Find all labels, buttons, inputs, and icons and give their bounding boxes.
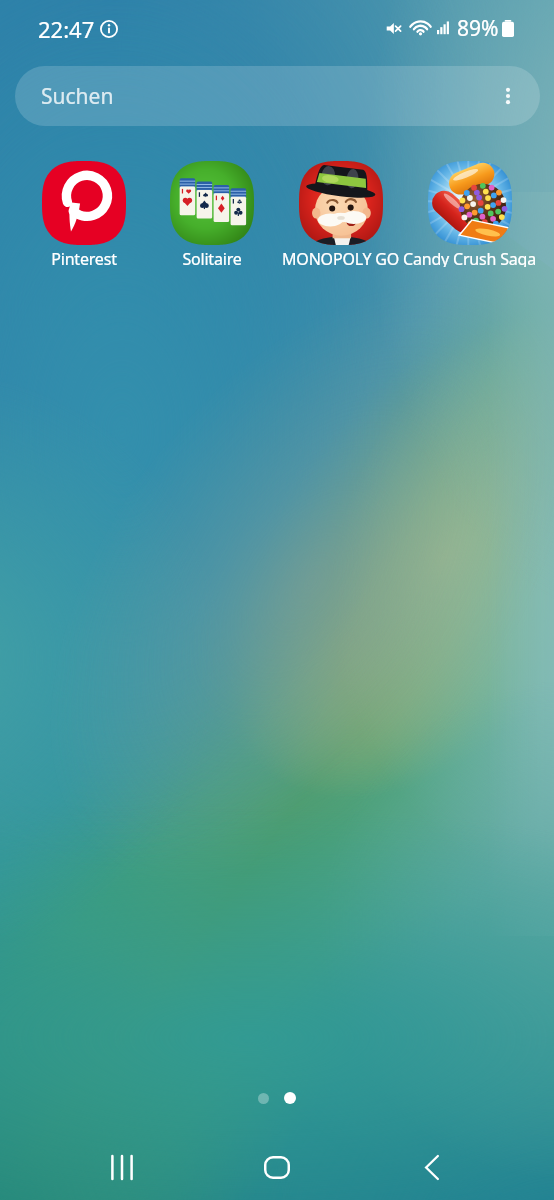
button[interactable]: Candy Crush Saga (405, 161, 534, 267)
staticText: 22:47 (38, 14, 95, 44)
button[interactable]: Back (392, 1137, 472, 1197)
staticText: Candy Crush Saga (403, 248, 536, 267)
button[interactable]: MONOPOLY GO (276, 161, 405, 267)
staticText: 89% (457, 14, 499, 43)
button[interactable]: Solitaire (148, 161, 276, 267)
staticText: Suchen (41, 82, 114, 111)
button[interactable]: Page 1 (258, 1093, 269, 1104)
button[interactable]: Pinterest (20, 161, 148, 267)
staticText: Pinterest (51, 248, 117, 267)
button[interactable]: More options (488, 76, 528, 116)
button[interactable]: Page 2 (284, 1092, 296, 1104)
button[interactable]: Recent apps (82, 1137, 162, 1197)
staticText: Solitaire (182, 248, 242, 267)
button[interactable]: Suchen (15, 66, 540, 126)
staticText: MONOPOLY GO (282, 248, 399, 267)
button[interactable]: Home (237, 1137, 317, 1197)
